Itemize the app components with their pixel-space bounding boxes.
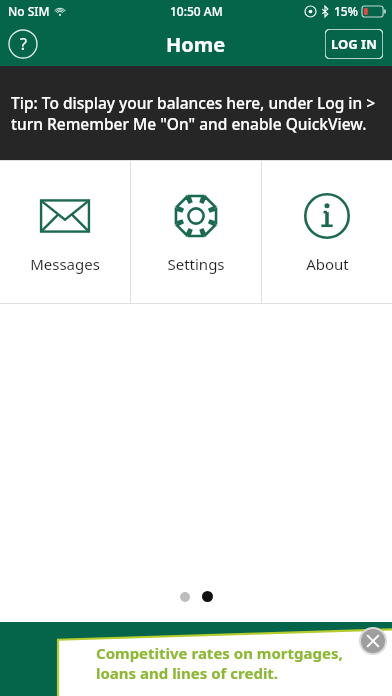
staticText: loans and lines of credit. (96, 663, 279, 683)
button[interactable] (202, 591, 213, 602)
staticText: 10:50 AM (170, 3, 223, 19)
button[interactable]: About (262, 160, 392, 304)
staticText: 15% (334, 3, 358, 19)
staticText: Home (166, 31, 226, 58)
button[interactable]: Close ad (358, 626, 388, 656)
staticText: LOG IN (331, 35, 377, 53)
button[interactable]: Help (8, 29, 38, 59)
staticText: Tip: To display your balances here, unde… (11, 92, 381, 135)
button[interactable]: Settings (131, 160, 261, 304)
staticText: About (306, 254, 349, 274)
staticText: Settings (167, 254, 225, 274)
staticText: ? (20, 33, 27, 55)
button[interactable] (180, 592, 190, 602)
button[interactable]: LOG IN (325, 29, 383, 59)
button[interactable]: Competitive rates on mortgages, (0, 622, 392, 696)
staticText: Competitive rates on mortgages, (96, 643, 343, 663)
staticText: Messages (30, 254, 100, 274)
button[interactable]: Messages (0, 160, 130, 304)
staticText: No SIM (8, 3, 50, 19)
